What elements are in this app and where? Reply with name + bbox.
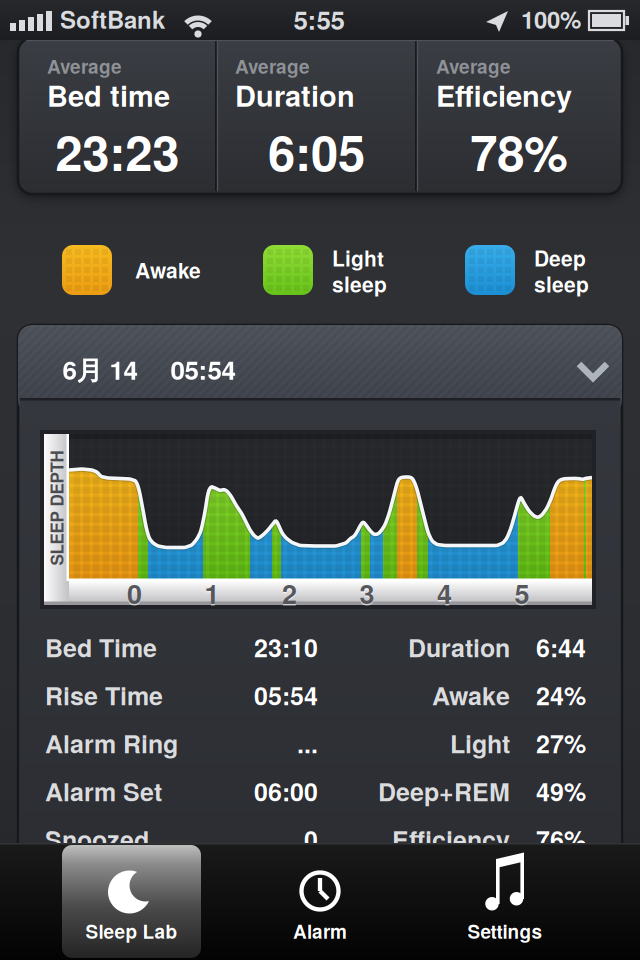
staticText: 05:54 — [254, 677, 318, 713]
staticText: Alarm Set — [45, 773, 162, 809]
staticText: Duration — [408, 629, 510, 665]
staticText: 3 — [359, 575, 374, 614]
staticText: 5 — [514, 575, 529, 614]
staticText: 24% — [536, 677, 586, 713]
staticText: Average — [235, 52, 310, 80]
staticText: Efficiency — [392, 821, 510, 857]
staticText: SLEEP DEPTH — [0, 496, 114, 520]
staticText: Average — [47, 52, 122, 80]
staticText: 5 — [514, 574, 529, 612]
staticText: 6:05 — [268, 116, 365, 186]
staticText: sleep — [534, 269, 589, 299]
staticText: Deep — [534, 243, 586, 273]
staticText: sleep — [332, 269, 387, 299]
staticText: 23:23 — [55, 116, 179, 186]
staticText: Snoozed — [45, 821, 149, 857]
staticText: 6:44 — [536, 629, 586, 665]
staticText: Alarm — [293, 917, 347, 945]
staticText: 23:10 — [254, 629, 318, 665]
staticText: 100% — [521, 2, 581, 36]
staticText: 1 — [204, 575, 219, 614]
staticText: 0 — [127, 574, 142, 612]
staticText: Deep+REM — [378, 773, 510, 809]
staticText: 0 — [304, 821, 318, 857]
staticText: 27% — [536, 725, 586, 761]
staticText: Bed Time — [45, 629, 157, 665]
staticText: 2 — [282, 575, 297, 614]
staticText: 0 — [127, 575, 142, 614]
staticText: 06:00 — [254, 773, 318, 809]
staticText: 1 — [204, 574, 219, 612]
staticText: Awake — [135, 255, 201, 285]
button[interactable]: Sleep Lab — [51, 843, 211, 960]
staticText: Alarm Ring — [45, 725, 178, 761]
staticText: Light — [450, 725, 510, 761]
staticText: 3 — [359, 574, 374, 612]
button[interactable]: Alarm — [240, 843, 400, 960]
staticText: Duration — [235, 74, 355, 116]
staticText: Average — [436, 52, 511, 80]
button[interactable]: 6月 14 — [18, 325, 622, 414]
staticText: SoftBank — [60, 2, 165, 36]
staticText: 4 — [437, 574, 452, 612]
staticText: Sleep Lab — [85, 917, 177, 945]
staticText: Bed time — [47, 74, 170, 116]
staticText: 2 — [282, 574, 297, 612]
staticText: 6月 14 — [62, 350, 137, 388]
staticText: 78% — [470, 116, 568, 186]
button[interactable]: Settings — [425, 843, 585, 960]
staticText: 49% — [536, 773, 586, 809]
staticText: Settings — [467, 917, 542, 945]
staticText: 4 — [437, 575, 452, 614]
staticText: 76% — [536, 821, 586, 857]
staticText: 5:55 — [293, 0, 344, 38]
staticText: ... — [297, 725, 318, 761]
staticText: Awake — [432, 677, 510, 713]
staticText: 05:54 — [170, 350, 235, 388]
staticText: Efficiency — [436, 74, 572, 116]
staticText: Light — [332, 243, 384, 273]
staticText: Rise Time — [45, 677, 163, 713]
